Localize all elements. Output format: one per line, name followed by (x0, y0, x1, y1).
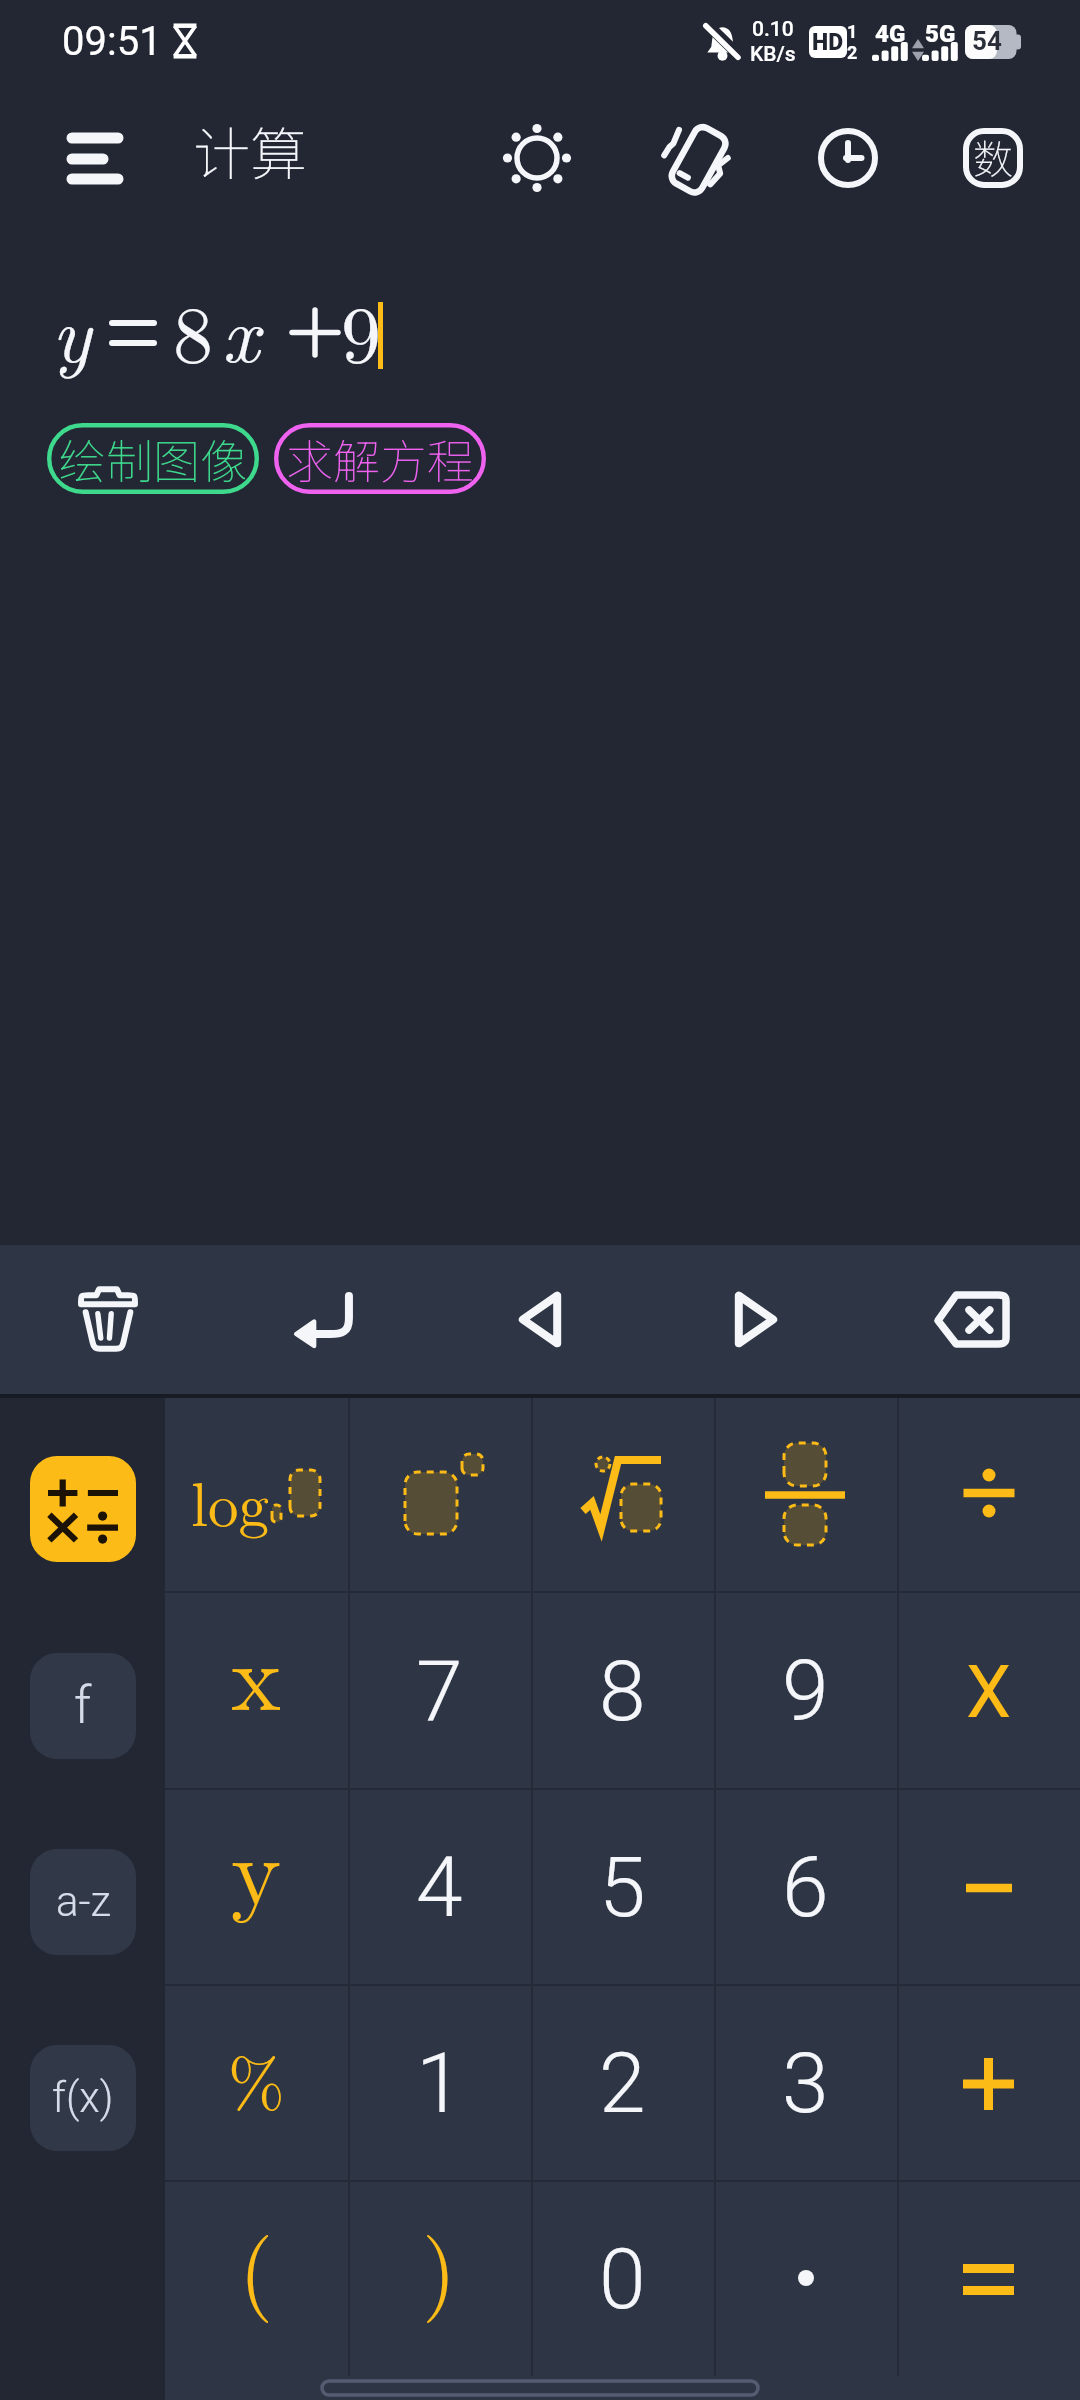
button[interactable]: % (165, 1984, 348, 2180)
staticText: y (52, 272, 91, 385)
button[interactable]: 6 (714, 1788, 897, 1984)
button[interactable] (897, 2180, 1080, 2376)
button[interactable]: 7 (348, 1591, 531, 1788)
button[interactable]: Clear all (0, 1245, 216, 1394)
staticText: 1 (416, 2034, 463, 2132)
staticText: log (191, 1457, 269, 1543)
staticText: 数 (973, 128, 1013, 186)
button[interactable]: Brightness (475, 100, 599, 216)
staticText: a-z (56, 1877, 111, 1926)
staticText: 6 (782, 1838, 829, 1936)
button[interactable]: 1 (348, 1984, 531, 2180)
staticText: % (228, 2030, 285, 2126)
button[interactable]: History (786, 100, 910, 216)
button[interactable]: a-z (30, 1849, 136, 1955)
staticText: ( (239, 2202, 274, 2327)
staticText: ) (422, 2202, 457, 2327)
staticText: 1 (847, 21, 858, 42)
staticText: 5 (599, 1838, 646, 1936)
button[interactable]: log (165, 1394, 348, 1591)
button[interactable] (714, 1394, 897, 1591)
button[interactable]: New line (216, 1245, 432, 1394)
button[interactable]: 绘制图像 (47, 423, 259, 494)
button[interactable]: Backspace (864, 1245, 1080, 1394)
button[interactable]: 2 (531, 1984, 714, 2180)
button[interactable]: ( (165, 2180, 348, 2376)
button[interactable]: f (30, 1653, 136, 1759)
staticText: 7 (416, 1642, 463, 1740)
staticText: 求解方程 (286, 424, 474, 492)
button[interactable]: 9 (714, 1591, 897, 1788)
staticText: 54 (972, 26, 1002, 56)
staticText: 计算 (193, 109, 307, 192)
button[interactable]: Move right (648, 1245, 864, 1394)
button[interactable]: x (165, 1591, 348, 1788)
button[interactable] (531, 1394, 714, 1591)
button[interactable]: X (897, 1591, 1080, 1788)
staticText: y (231, 1797, 282, 1932)
button[interactable] (348, 1394, 531, 1591)
button[interactable]: 求解方程 (274, 423, 486, 494)
staticText: f(x) (52, 2073, 114, 2122)
staticText: 8 (599, 1642, 646, 1740)
staticText: 5G (925, 20, 956, 48)
button[interactable]: Number keyboard (935, 100, 1051, 216)
staticText: 9 (782, 1642, 829, 1740)
button[interactable] (714, 2180, 897, 2376)
staticText: f (74, 1675, 92, 1736)
staticText: 3 (782, 2034, 829, 2132)
staticText: 0.10 (752, 17, 794, 42)
button[interactable]: 3 (714, 1984, 897, 2180)
staticText: x (222, 272, 260, 385)
button[interactable]: Basic operators (30, 1456, 136, 1562)
button[interactable]: y (165, 1788, 348, 1984)
staticText: 2 (599, 2034, 646, 2132)
button[interactable]: 8 (531, 1591, 714, 1788)
staticText: 4 (416, 1838, 463, 1936)
staticText: KB/s (750, 42, 796, 67)
button[interactable] (897, 1394, 1080, 1591)
staticText: 8 (173, 272, 213, 385)
button[interactable]: Vibrate (635, 100, 759, 216)
staticText: 2 (847, 42, 858, 63)
button[interactable]: 5 (531, 1788, 714, 1984)
button[interactable]: 4 (348, 1788, 531, 1984)
staticText: 0 (599, 2230, 646, 2328)
staticText: 09:51 (62, 18, 162, 65)
staticText: x (231, 1603, 282, 1738)
staticText: X (966, 1650, 1012, 1734)
button[interactable] (897, 1984, 1080, 2180)
button[interactable]: 0 (531, 2180, 714, 2376)
button[interactable]: ) (348, 2180, 531, 2376)
button[interactable]: Move left (432, 1245, 648, 1394)
button[interactable]: f(x) (30, 2045, 136, 2151)
staticText: 4G (875, 20, 906, 48)
staticText: HD (812, 29, 844, 56)
button[interactable]: Menu (20, 103, 170, 213)
button[interactable] (897, 1788, 1080, 1984)
staticText: 9 (341, 272, 381, 385)
staticText: 绘制图像 (59, 424, 247, 492)
